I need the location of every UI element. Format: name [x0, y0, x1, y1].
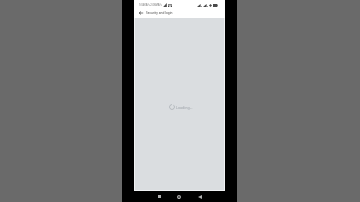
staticText: Security and login — [146, 11, 173, 15]
staticText: Loading... — [176, 105, 193, 110]
button[interactable]: Back — [190, 191, 210, 202]
button[interactable]: Home — [169, 191, 189, 202]
staticText: 9.04KB/s 2.06MB/s — [139, 3, 162, 7]
button[interactable]: Navigate up — [134, 8, 146, 18]
button[interactable]: Recent apps — [149, 191, 169, 202]
